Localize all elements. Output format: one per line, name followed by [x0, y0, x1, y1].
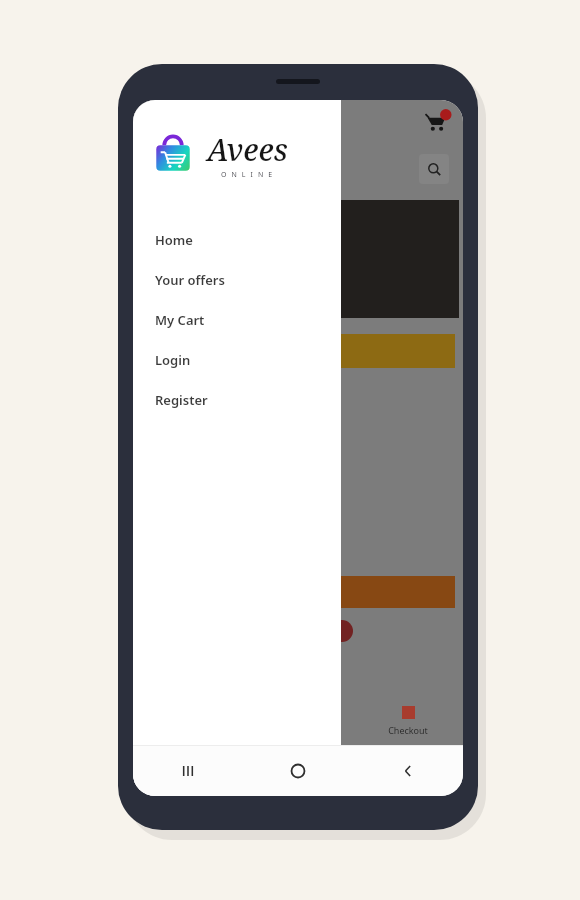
- staticText: Home: [155, 231, 193, 249]
- button[interactable]: Search: [419, 154, 449, 184]
- button[interactable]: Avees: [133, 481, 463, 530]
- staticText: O N L I N E: [221, 170, 274, 180]
- button[interactable]: Back: [353, 745, 463, 796]
- button[interactable]: Checkout: [353, 697, 463, 745]
- button[interactable]: Product: [141, 576, 455, 608]
- button[interactable]: Your offers: [133, 260, 341, 300]
- button[interactable]: Home: [133, 220, 341, 260]
- staticText: Checkout: [388, 724, 428, 736]
- staticText: Your offers: [155, 271, 225, 289]
- button[interactable]: Avees: [133, 388, 463, 437]
- button[interactable]: Register: [133, 380, 341, 420]
- staticText: Register: [155, 391, 208, 409]
- button[interactable]: Category: [141, 334, 455, 368]
- button[interactable]: Login: [133, 340, 341, 380]
- staticText: Login: [155, 351, 191, 369]
- staticText: Avees: [207, 129, 288, 170]
- button[interactable]: Recents: [133, 745, 243, 796]
- button[interactable]: Cart: [425, 109, 451, 135]
- button[interactable]: My Cart: [133, 300, 341, 340]
- button[interactable]: Cart: [243, 697, 353, 745]
- staticText: My Cart: [155, 311, 205, 329]
- button[interactable]: Home: [243, 745, 353, 796]
